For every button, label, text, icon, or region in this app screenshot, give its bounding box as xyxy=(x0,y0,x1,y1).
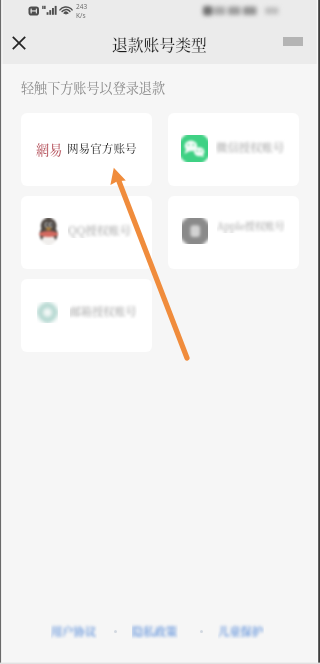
staticText: 網易 xyxy=(36,140,63,159)
staticText: 轻触下方账号以登录退款 xyxy=(21,78,166,97)
staticText: 网易官方账号 xyxy=(67,140,137,157)
staticText: Apple授权账号 xyxy=(217,219,285,233)
staticText: 邮箱授权账号 xyxy=(70,303,137,319)
button[interactable]: 儿童保护 xyxy=(218,623,264,639)
staticText: 退款账号类型 xyxy=(112,33,207,56)
button[interactable]: 关闭 xyxy=(6,30,32,56)
staticText: 用户协议 xyxy=(51,623,97,639)
staticText: QQ授权账号 xyxy=(68,222,132,238)
button[interactable]: 隐私政策 xyxy=(132,623,178,639)
staticText: K/s xyxy=(76,11,86,20)
button[interactable]: 邮箱授权账号 xyxy=(21,279,152,352)
button[interactable]: 网易官方账号 xyxy=(21,113,152,186)
staticText: 243 xyxy=(76,2,88,11)
staticText: 隐私政策 xyxy=(132,623,178,639)
button[interactable]: 用户协议 xyxy=(51,623,97,639)
button[interactable]: 微信授权账号 xyxy=(168,113,299,186)
staticText: 儿童保护 xyxy=(218,623,264,639)
button[interactable]: Apple 授权账号 xyxy=(168,196,299,269)
button[interactable]: QQ授权账号 xyxy=(21,196,152,269)
staticText: 微信授权账号 xyxy=(216,139,285,155)
